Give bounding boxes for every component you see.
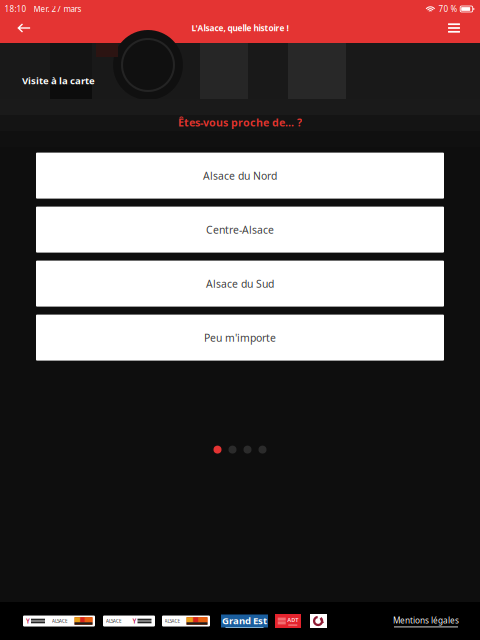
staticText: L'Alsace, quelle histoire ! — [191, 22, 288, 34]
button[interactable]: Peu m'importe — [36, 315, 444, 361]
staticText: Visite à la carte — [22, 74, 95, 87]
button[interactable]: Centre-Alsace — [36, 207, 444, 253]
button[interactable]: Alsace du Sud — [36, 261, 444, 307]
button[interactable]: Back — [9, 18, 39, 38]
staticText: Alsace du Sud — [206, 276, 274, 291]
staticText: Centre-Alsace — [206, 222, 274, 237]
staticText: Mentions légales — [393, 615, 459, 626]
button[interactable]: Alsace du Nord — [36, 153, 444, 199]
staticText: 18:10 — [4, 4, 26, 14]
button[interactable]: Menu — [439, 18, 469, 38]
staticText: Y — [26, 617, 30, 625]
staticText: ALSACE — [164, 618, 180, 624]
staticText: Y — [132, 617, 136, 625]
staticText: Alsace du Nord — [203, 168, 277, 183]
staticText: Êtes-vous proche de... ? — [178, 115, 302, 130]
button[interactable]: Mentions légales — [393, 615, 459, 627]
staticText: Grand Est — [222, 614, 267, 627]
staticText: Mer. 27 mars — [33, 4, 81, 14]
staticText: ALSACE — [106, 618, 122, 624]
staticText: ADT — [287, 616, 298, 624]
staticText: 70 % — [438, 4, 457, 14]
staticText: Peu m'importe — [204, 330, 276, 345]
staticText: ALSACE — [52, 618, 68, 624]
